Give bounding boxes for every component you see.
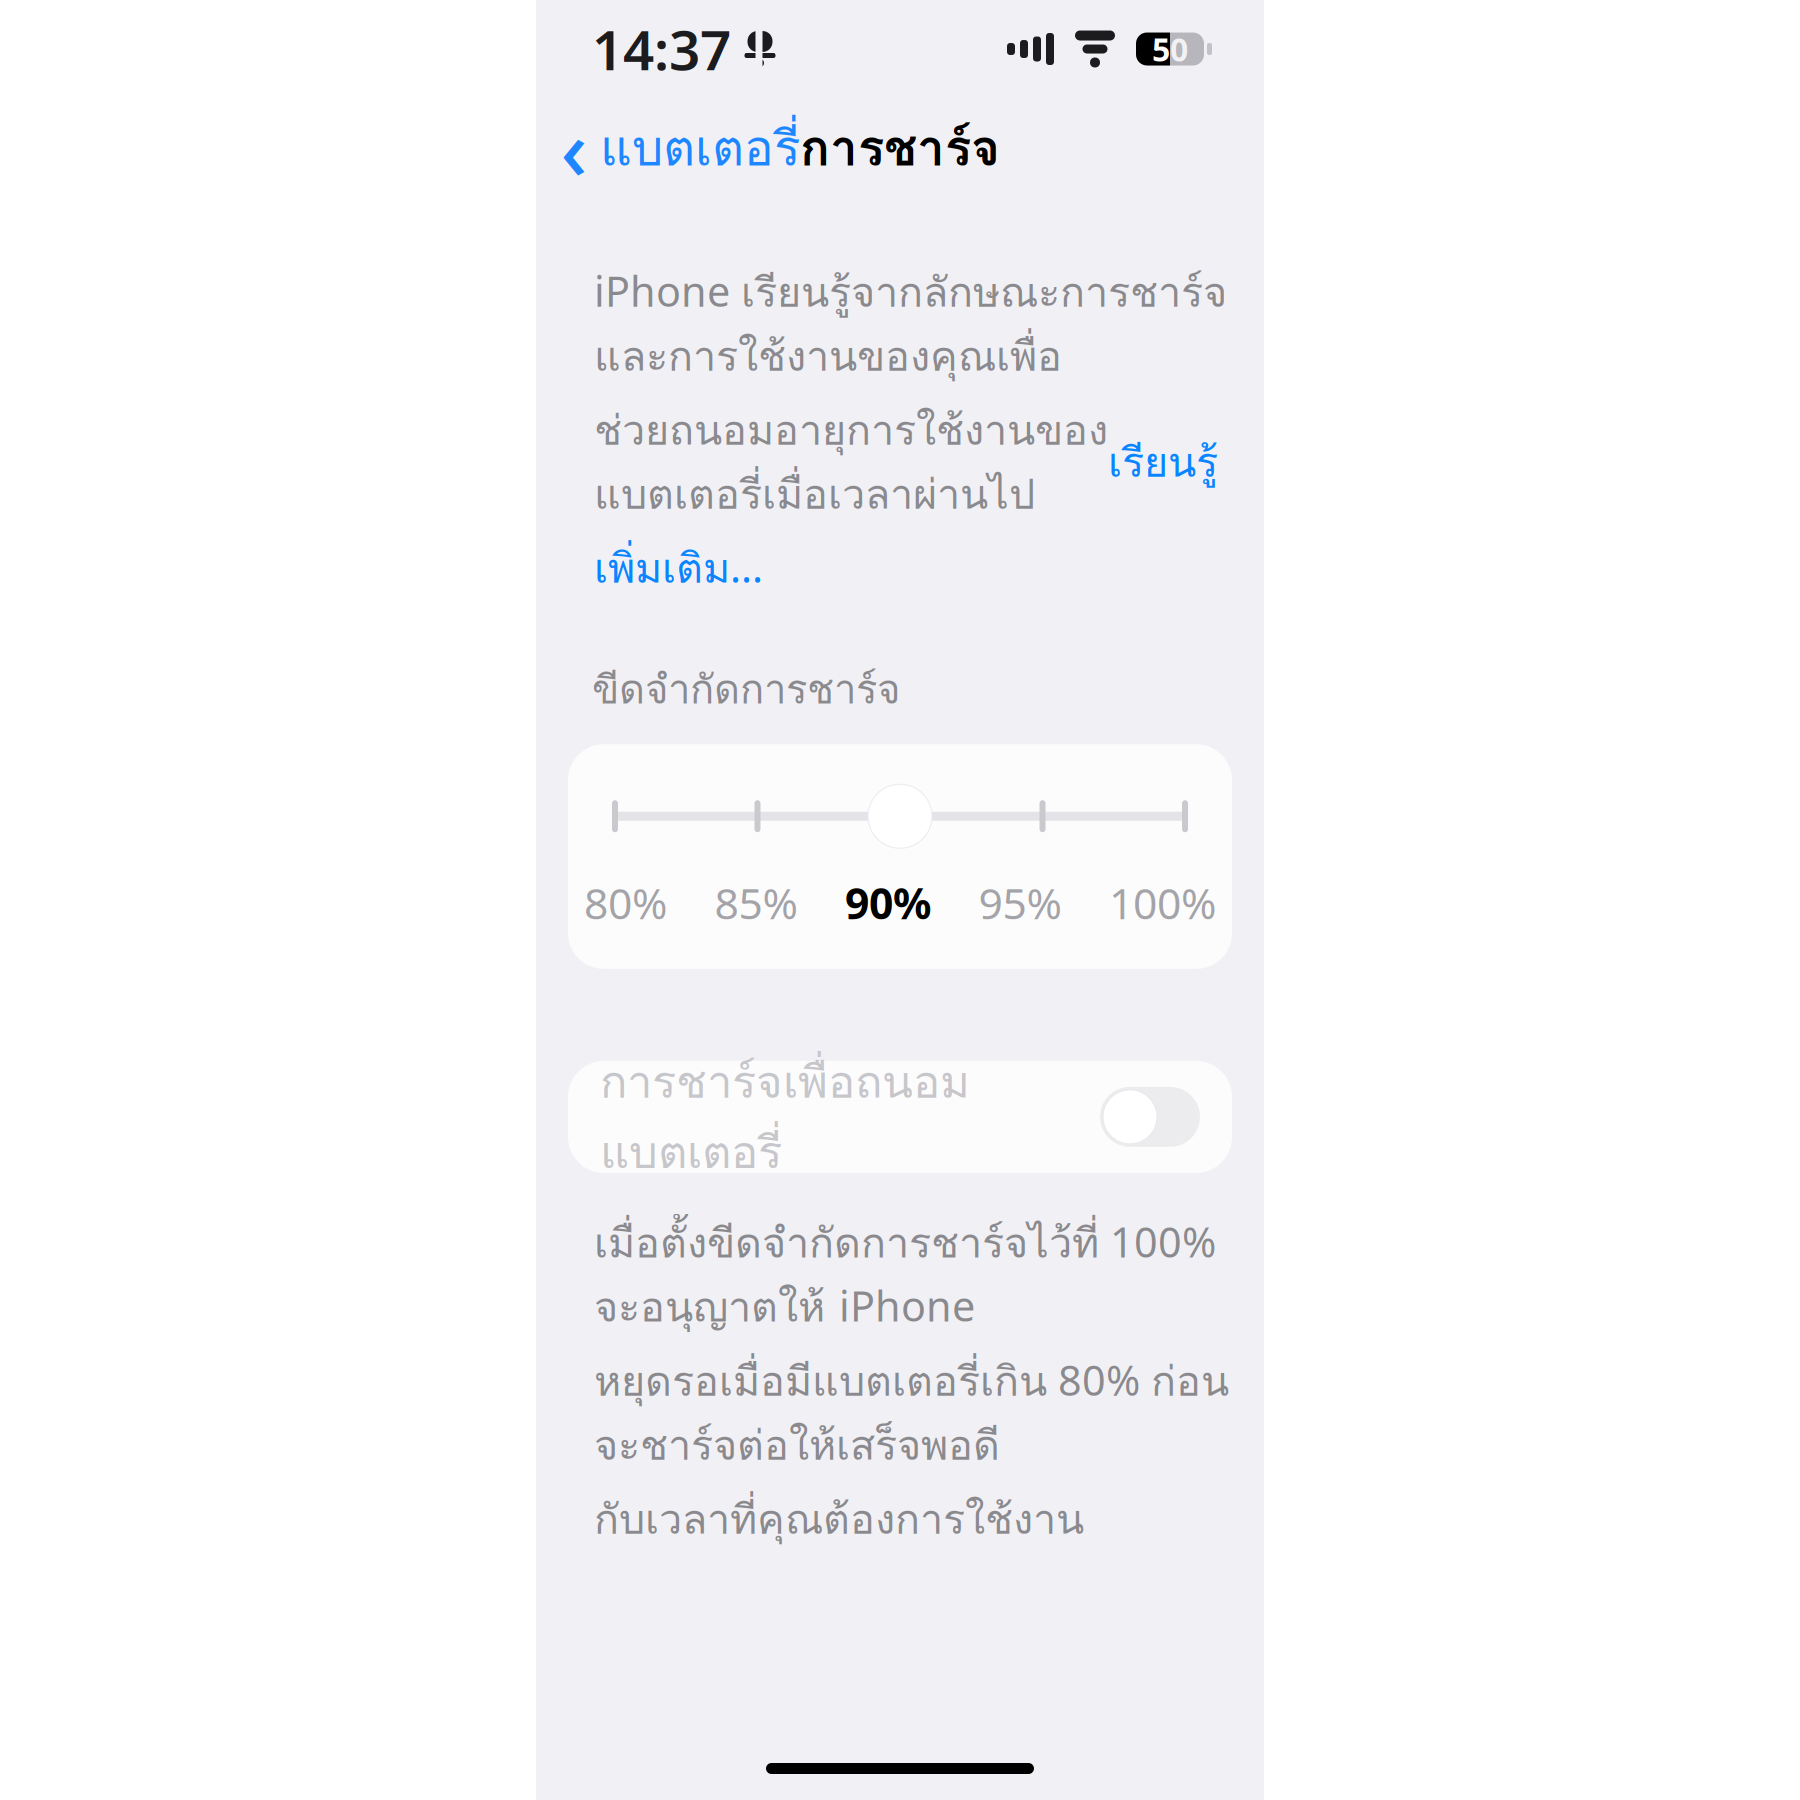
staticText: ช่วยถนอมอายุการใช้งานของแบตเตอรี่เมื่อเว… [594,398,1108,526]
staticText: 80% [584,874,667,931]
staticText: กับเวลาที่คุณต้องการใช้งาน [594,1487,1084,1551]
staticText: 95% [978,874,1061,931]
staticText: ขีดจำกัดการชาร์จ [592,658,900,720]
staticText: เมื่อตั้งขีดจำกัดการชาร์จไว้ที่ 100% จะอ… [594,1211,1216,1339]
staticText: แบตเตอรี่ [600,110,800,186]
staticText: การชาร์จเพื่อถนอมแบตเตอรี่ [600,1047,970,1187]
staticText: ‹ [560,93,587,203]
staticText: หยุดรอเมื่อมีแบตเตอรี่เกิน 80% ก่อนจะชาร… [594,1349,1229,1477]
staticText: 85% [714,874,797,931]
staticText: 14:37 [592,13,731,85]
staticText: 90% [845,874,931,931]
button[interactable]: Charging limit, 90 percent [868,784,932,848]
staticText: iPhone เรียนรู้จากลักษณะการชาร์จและการใช… [594,260,1227,388]
staticText: เรียนรู้ [1108,430,1218,494]
button[interactable]: เรียนรู้ [1108,430,1218,494]
staticText: การชาร์จ [800,110,1000,186]
staticText: 0 [1170,28,1188,70]
staticText: 5 [1152,28,1170,70]
button[interactable]: ‹ [536,98,826,198]
staticText: 100% [1109,874,1216,931]
staticText: เพิ่มเติม... [594,536,763,600]
button[interactable]: เพิ่มเติม... [594,536,763,600]
button[interactable]: การชาร์จเพื่อถนอมแบตเตอรี่ [568,1061,1232,1173]
